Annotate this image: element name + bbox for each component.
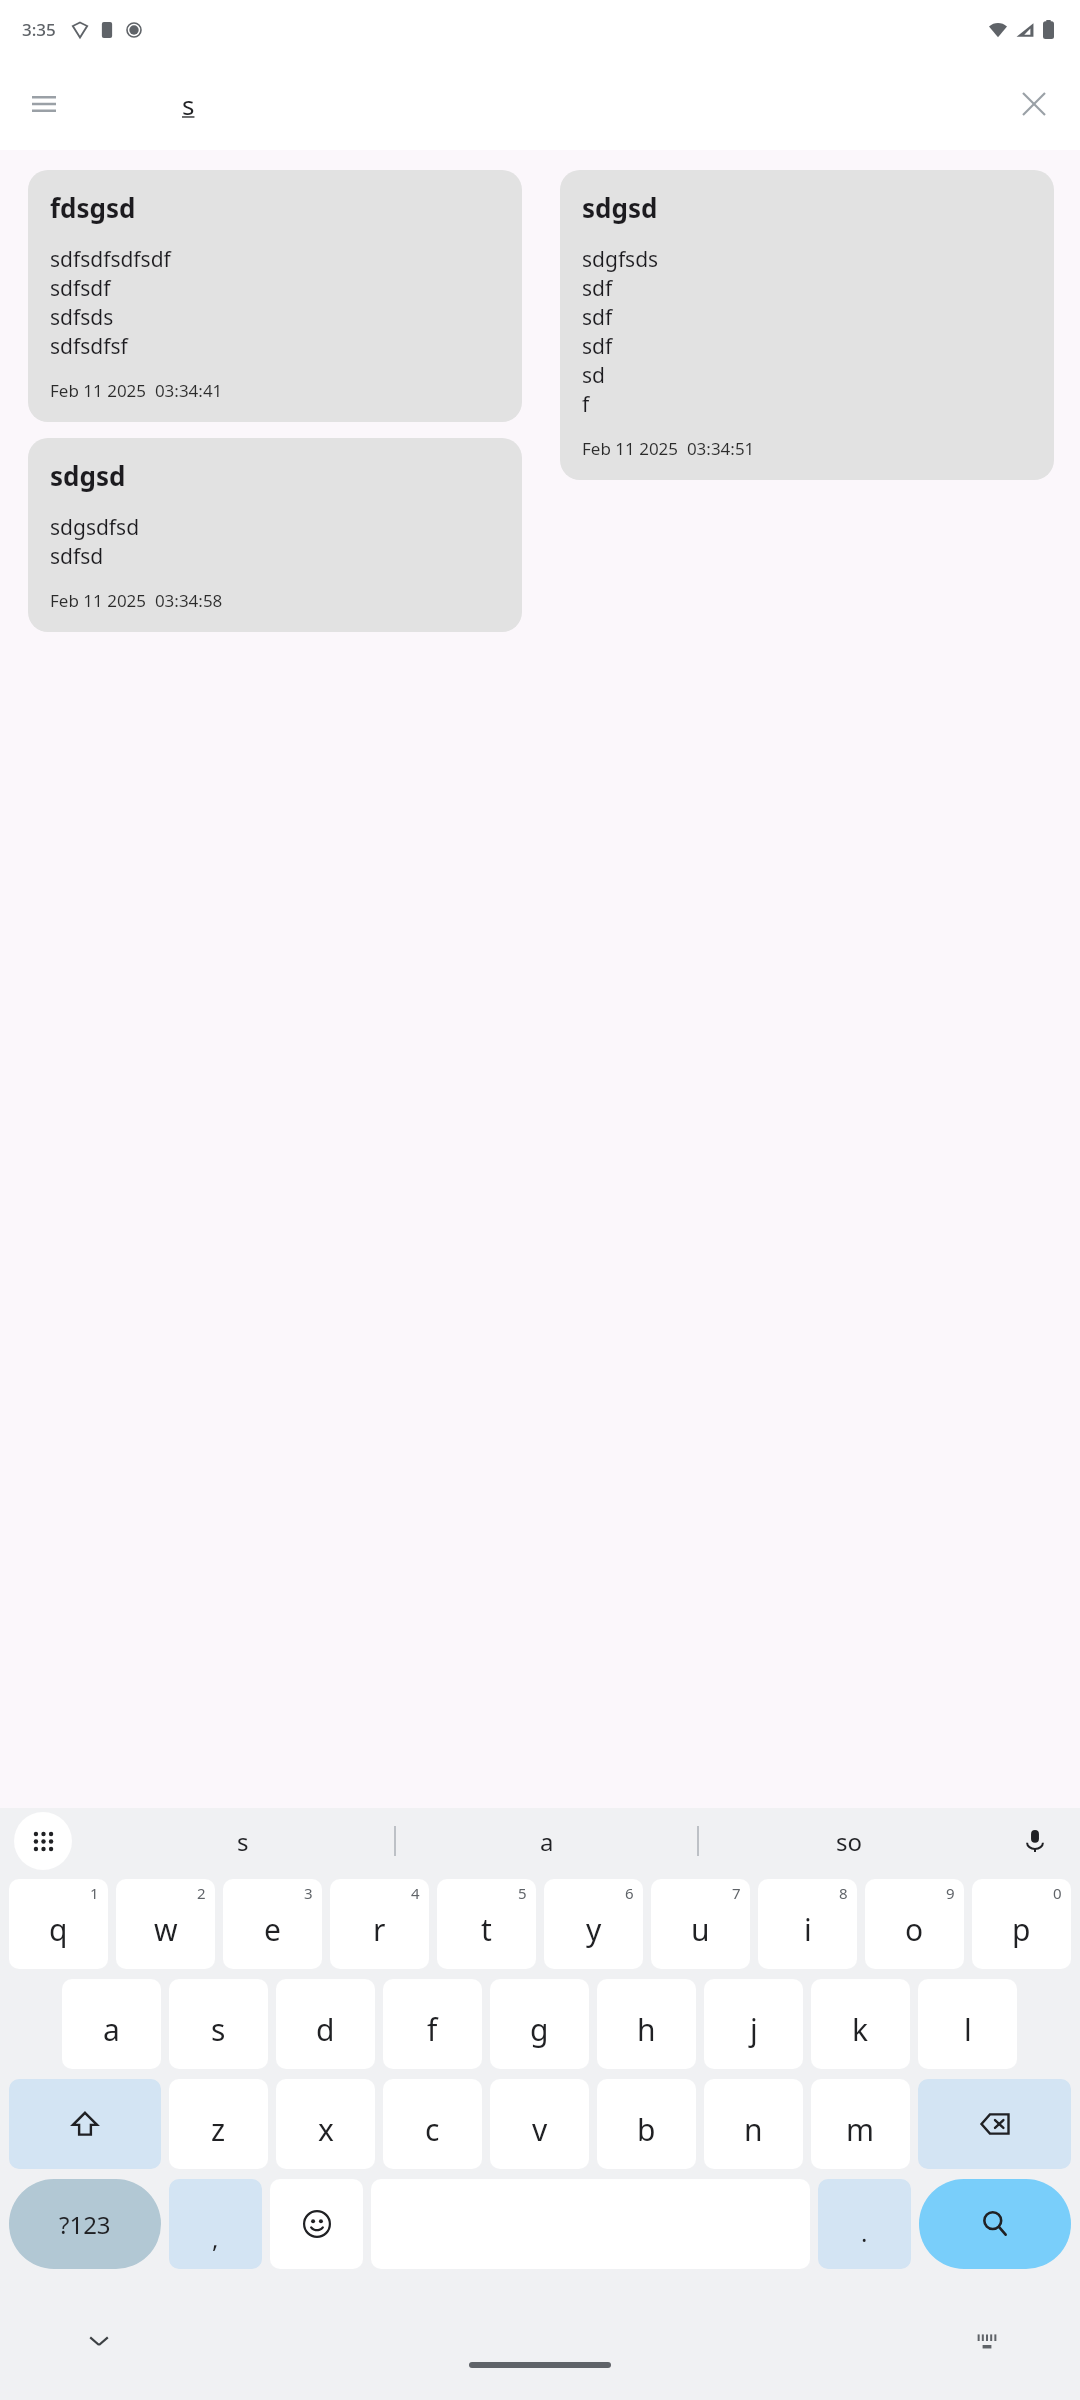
button[interactable]: ?123 — [9, 2179, 161, 2269]
staticText: q — [49, 1909, 68, 1950]
button[interactable]: 1 — [9, 1879, 108, 1969]
staticText: sdfsdfsdfsdf — [50, 245, 171, 274]
button[interactable]: Search — [919, 2179, 1071, 2269]
button[interactable]: c — [383, 2079, 482, 2169]
staticText: s — [211, 2009, 226, 2050]
staticText: u — [691, 1909, 710, 1950]
staticText: h — [637, 2009, 656, 2050]
button[interactable]: so — [699, 1808, 1000, 1874]
staticText: ?123 — [59, 2208, 111, 2241]
staticText: 0 — [1053, 1883, 1062, 1903]
staticText: fdsgsd — [50, 190, 136, 225]
staticText: p — [1012, 1909, 1031, 1950]
button[interactable]: h — [597, 1979, 696, 2069]
staticText: 9 — [946, 1883, 955, 1903]
button[interactable]: Shift — [9, 2079, 161, 2169]
staticText: g — [530, 2009, 549, 2050]
staticText: sdf — [582, 303, 613, 332]
staticText: 8 — [839, 1883, 848, 1903]
staticText: 2 — [197, 1883, 206, 1903]
button[interactable]: x — [276, 2079, 375, 2169]
button[interactable]: 2 — [116, 1879, 215, 1969]
button[interactable]: g — [490, 1979, 589, 2069]
staticText: b — [637, 2109, 656, 2150]
staticText: . — [861, 2216, 868, 2249]
staticText: s — [182, 87, 195, 122]
staticText: v — [532, 2109, 548, 2150]
staticText: r — [373, 1909, 386, 1950]
staticText: y — [586, 1909, 602, 1950]
staticText: 1 — [90, 1883, 99, 1903]
button[interactable]: d — [276, 1979, 375, 2069]
button[interactable]: 6 — [544, 1879, 643, 1969]
staticText: i — [804, 1909, 812, 1950]
staticText: d — [316, 2009, 335, 2050]
staticText: sdf — [582, 274, 613, 303]
button[interactable]: Switch keyboard — [962, 2316, 1012, 2366]
button[interactable]: fdsgsd — [28, 170, 522, 422]
staticText: so — [836, 1825, 863, 1858]
button[interactable]: z — [169, 2079, 268, 2169]
button[interactable]: 0 — [972, 1879, 1071, 1969]
staticText: Feb 11 2025 03:34:41 — [50, 379, 223, 402]
button[interactable]: b — [597, 2079, 696, 2169]
staticText: m — [846, 2109, 875, 2150]
staticText: sdgsdfsd — [50, 513, 140, 542]
staticText: x — [318, 2109, 334, 2150]
button[interactable]: Clear — [1008, 78, 1060, 130]
staticText: w — [154, 1909, 178, 1950]
button[interactable]: m — [811, 2079, 910, 2169]
staticText: a — [103, 2009, 120, 2050]
staticText: 6 — [625, 1883, 634, 1903]
button[interactable]: 5 — [437, 1879, 536, 1969]
button[interactable]: Hide keyboard — [74, 2316, 124, 2366]
button[interactable]: 7 — [651, 1879, 750, 1969]
staticText: Feb 11 2025 03:34:51 — [582, 437, 755, 460]
button[interactable]: Keyboard options — [14, 1812, 72, 1870]
staticText: 4 — [411, 1883, 420, 1903]
staticText: f — [582, 390, 590, 419]
staticText: t — [481, 1909, 492, 1950]
button[interactable]: a — [396, 1808, 697, 1874]
staticText: sdfsds — [50, 303, 114, 332]
button[interactable] — [270, 2179, 363, 2269]
staticText: 3:35 — [22, 18, 56, 41]
staticText: Feb 11 2025 03:34:58 — [50, 589, 223, 612]
button[interactable]: 3 — [223, 1879, 322, 1969]
button[interactable]: k — [811, 1979, 910, 2069]
staticText: s — [237, 1825, 249, 1858]
button[interactable]: a — [62, 1979, 161, 2069]
staticText: sdfsdf — [50, 274, 111, 303]
staticText: z — [211, 2109, 226, 2150]
button[interactable]: Backspace — [918, 2079, 1071, 2169]
button[interactable]: Voice input — [1010, 1816, 1060, 1866]
staticText: 3 — [304, 1883, 313, 1903]
button[interactable]: v — [490, 2079, 589, 2169]
button[interactable]: l — [918, 1979, 1017, 2069]
staticText: sdgsd — [50, 458, 126, 493]
staticText: sdfsd — [50, 542, 104, 571]
button[interactable]: 4 — [330, 1879, 429, 1969]
button[interactable]: . — [818, 2179, 911, 2269]
staticText: sdgfsds — [582, 245, 659, 274]
staticText: j — [750, 2009, 758, 2050]
button[interactable]: , — [169, 2179, 262, 2269]
button[interactable]: sdgsd — [28, 438, 522, 632]
button[interactable]: s — [169, 1979, 268, 2069]
staticText: c — [425, 2109, 440, 2150]
button[interactable]: f — [383, 1979, 482, 2069]
button[interactable]: 8 — [758, 1879, 857, 1969]
button[interactable]: s — [92, 1808, 394, 1874]
button[interactable]: j — [704, 1979, 803, 2069]
staticText: 7 — [732, 1883, 741, 1903]
staticText: sdf — [582, 332, 613, 361]
staticText: sd — [582, 361, 605, 390]
button[interactable]: sdgsd — [560, 170, 1054, 480]
staticText: sdgsd — [582, 190, 658, 225]
button[interactable]: 9 — [865, 1879, 964, 1969]
staticText: n — [744, 2109, 763, 2150]
button[interactable]: Menu — [18, 78, 70, 130]
button[interactable]: n — [704, 2079, 803, 2169]
staticText: l — [964, 2009, 972, 2050]
